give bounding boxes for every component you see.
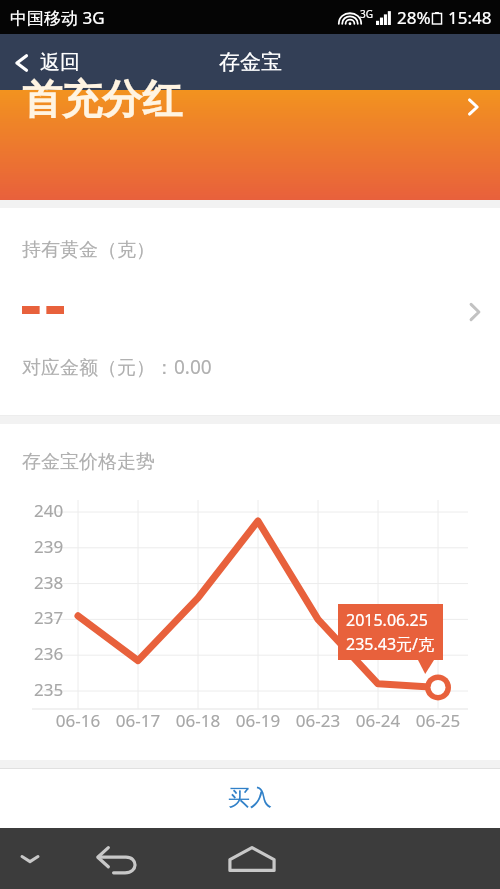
button[interactable]: 买入 xyxy=(0,768,500,828)
staticText: 235 xyxy=(34,678,64,701)
staticText: 238 xyxy=(34,571,64,594)
staticText: 买入 xyxy=(228,784,272,812)
staticText: 中国移动 3G xyxy=(10,6,105,29)
staticText: 06-24 xyxy=(352,709,404,732)
staticText: 235.43元/克 xyxy=(346,633,435,655)
staticText: 06-18 xyxy=(172,709,224,732)
staticText: 236 xyxy=(34,642,64,665)
staticText: 28% xyxy=(397,6,431,29)
staticText: 06-17 xyxy=(112,709,164,732)
staticText: 返回 xyxy=(40,50,80,75)
button[interactable]: Back xyxy=(86,834,150,884)
staticText: 对应金额（元）：0.00 xyxy=(22,354,212,380)
button[interactable]: Hide navigation bar xyxy=(8,841,52,877)
staticText: 3G xyxy=(360,7,373,21)
button[interactable]: Home xyxy=(218,834,286,884)
staticText: 存金宝价格走势 xyxy=(22,450,155,474)
staticText: 06-16 xyxy=(52,709,104,732)
staticText: 持有黄金（克） xyxy=(22,238,155,262)
staticText: 240 xyxy=(34,499,64,522)
staticText: 06-25 xyxy=(412,709,464,732)
staticText: 2015.06.25 xyxy=(346,609,428,631)
staticText: 15:48 xyxy=(448,6,492,29)
button[interactable]: 持有黄金（克） xyxy=(0,208,500,416)
button[interactable]: 返回 xyxy=(0,42,94,83)
staticText: 首充分红 xyxy=(22,74,182,124)
staticText: 237 xyxy=(34,606,64,629)
staticText: 239 xyxy=(34,535,64,558)
staticText: 06-23 xyxy=(292,709,344,732)
staticText: 06-19 xyxy=(232,709,284,732)
button[interactable]: 首充分红 xyxy=(0,90,500,200)
staticText: 存金宝 xyxy=(219,49,282,75)
